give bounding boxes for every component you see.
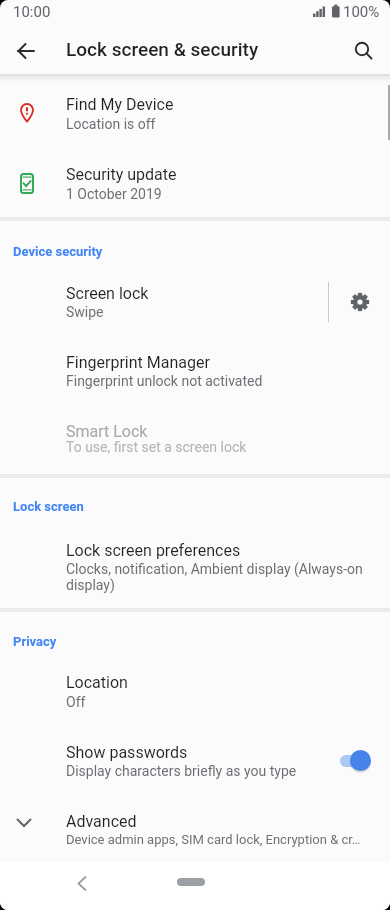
button[interactable]: Fingerprint Manager [0, 345, 390, 411]
staticText: Find My Device [66, 95, 174, 114]
staticText: Show passwords [66, 743, 188, 762]
staticText: Screen lock [66, 284, 149, 303]
staticText: Privacy [13, 634, 57, 649]
staticText: Swipe [66, 304, 104, 320]
staticText: Fingerprint Manager [66, 353, 210, 372]
button[interactable]: Show passwords [0, 735, 390, 805]
button[interactable] [338, 280, 382, 324]
staticText: Location is off [66, 116, 156, 132]
staticText: Lock screen & security [66, 38, 259, 60]
staticText: Smart Lock [66, 422, 148, 441]
button[interactable]: Find My Device [0, 88, 390, 158]
button[interactable]: Security update [0, 158, 390, 224]
staticText: 100% [343, 3, 380, 21]
staticText: Location [66, 673, 128, 692]
button[interactable]: Location [0, 665, 390, 735]
button[interactable] [346, 33, 382, 69]
button[interactable]: Screen lock [0, 276, 328, 328]
staticText: Fingerprint unlock not activated [66, 373, 263, 389]
staticText: Device security [13, 244, 103, 259]
staticText: To use, first set a screen lock [66, 439, 247, 455]
staticText: Advanced [66, 812, 137, 831]
button[interactable]: Lock screen preferences [0, 532, 390, 604]
staticText: Display characters briefly as you type [66, 763, 297, 779]
staticText: Security update [66, 165, 177, 184]
staticText: Clocks, notification, Ambient display (A… [66, 561, 363, 577]
button[interactable] [340, 750, 372, 774]
staticText: Device admin apps, SIM card lock, Encryp… [66, 832, 361, 847]
button[interactable]: Advanced [0, 805, 390, 855]
button[interactable] [8, 33, 44, 69]
staticText: Lock screen [13, 499, 84, 514]
staticText: Off [66, 694, 86, 710]
staticText: 1 October 2019 [66, 186, 162, 202]
staticText: 10:00 [13, 3, 51, 21]
staticText: Lock screen preferences [66, 541, 241, 560]
button[interactable] [66, 868, 100, 902]
button[interactable]: Smart Lock [0, 414, 390, 469]
staticText: display) [66, 577, 115, 593]
button[interactable] [177, 878, 205, 886]
